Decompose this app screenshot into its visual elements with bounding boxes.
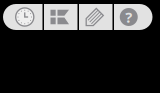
button[interactable]: Layout: [44, 4, 77, 30]
staticText: ?: [125, 7, 132, 27]
button[interactable]: Help: [114, 4, 152, 30]
button[interactable]: Edit: [79, 4, 112, 30]
button[interactable]: Recents: [3, 4, 42, 30]
